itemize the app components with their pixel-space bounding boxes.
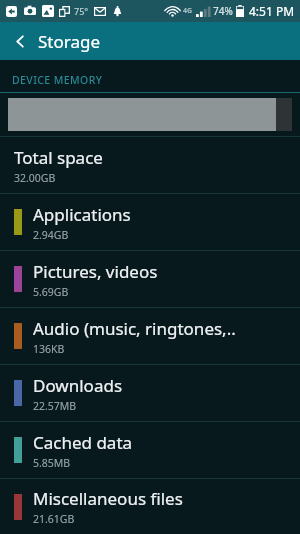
staticText: 4G: [183, 6, 193, 16]
staticText: Applications: [33, 203, 131, 226]
button[interactable]: [0, 93, 300, 136]
button[interactable]: Miscellaneous files: [0, 479, 300, 534]
staticText: Cached data: [33, 431, 133, 454]
button[interactable]: Back: [0, 22, 300, 60]
staticText: Miscellaneous files: [33, 487, 183, 510]
staticText: 5.85MB: [33, 456, 71, 470]
staticText: Downloads: [33, 374, 123, 397]
staticText: 2.94GB: [33, 228, 69, 242]
staticText: 5.69GB: [33, 285, 69, 299]
button[interactable]: Applications: [0, 194, 300, 250]
staticText: Total space: [14, 146, 103, 169]
staticText: Pictures, videos: [33, 260, 158, 283]
button[interactable]: Pictures, videos: [0, 251, 300, 307]
staticText: 136KB: [33, 342, 65, 356]
button[interactable]: Audio (music, ringtones,..: [0, 308, 300, 364]
staticText: 22.57MB: [33, 399, 77, 413]
staticText: 32.00GB: [14, 171, 56, 185]
staticText: Storage: [38, 30, 101, 53]
button[interactable]: Total space: [0, 137, 300, 193]
other: Back: [9, 30, 31, 52]
button[interactable]: Cached data: [0, 422, 300, 478]
button[interactable]: Downloads: [0, 365, 300, 421]
staticText: Audio (music, ringtones,..: [33, 317, 236, 340]
staticText: DEVICE MEMORY: [12, 73, 103, 87]
staticText: 74%: [213, 4, 233, 18]
staticText: 21.61GB: [33, 512, 75, 526]
staticText: 4:51 PM: [249, 3, 295, 19]
staticText: 75°: [74, 5, 89, 17]
